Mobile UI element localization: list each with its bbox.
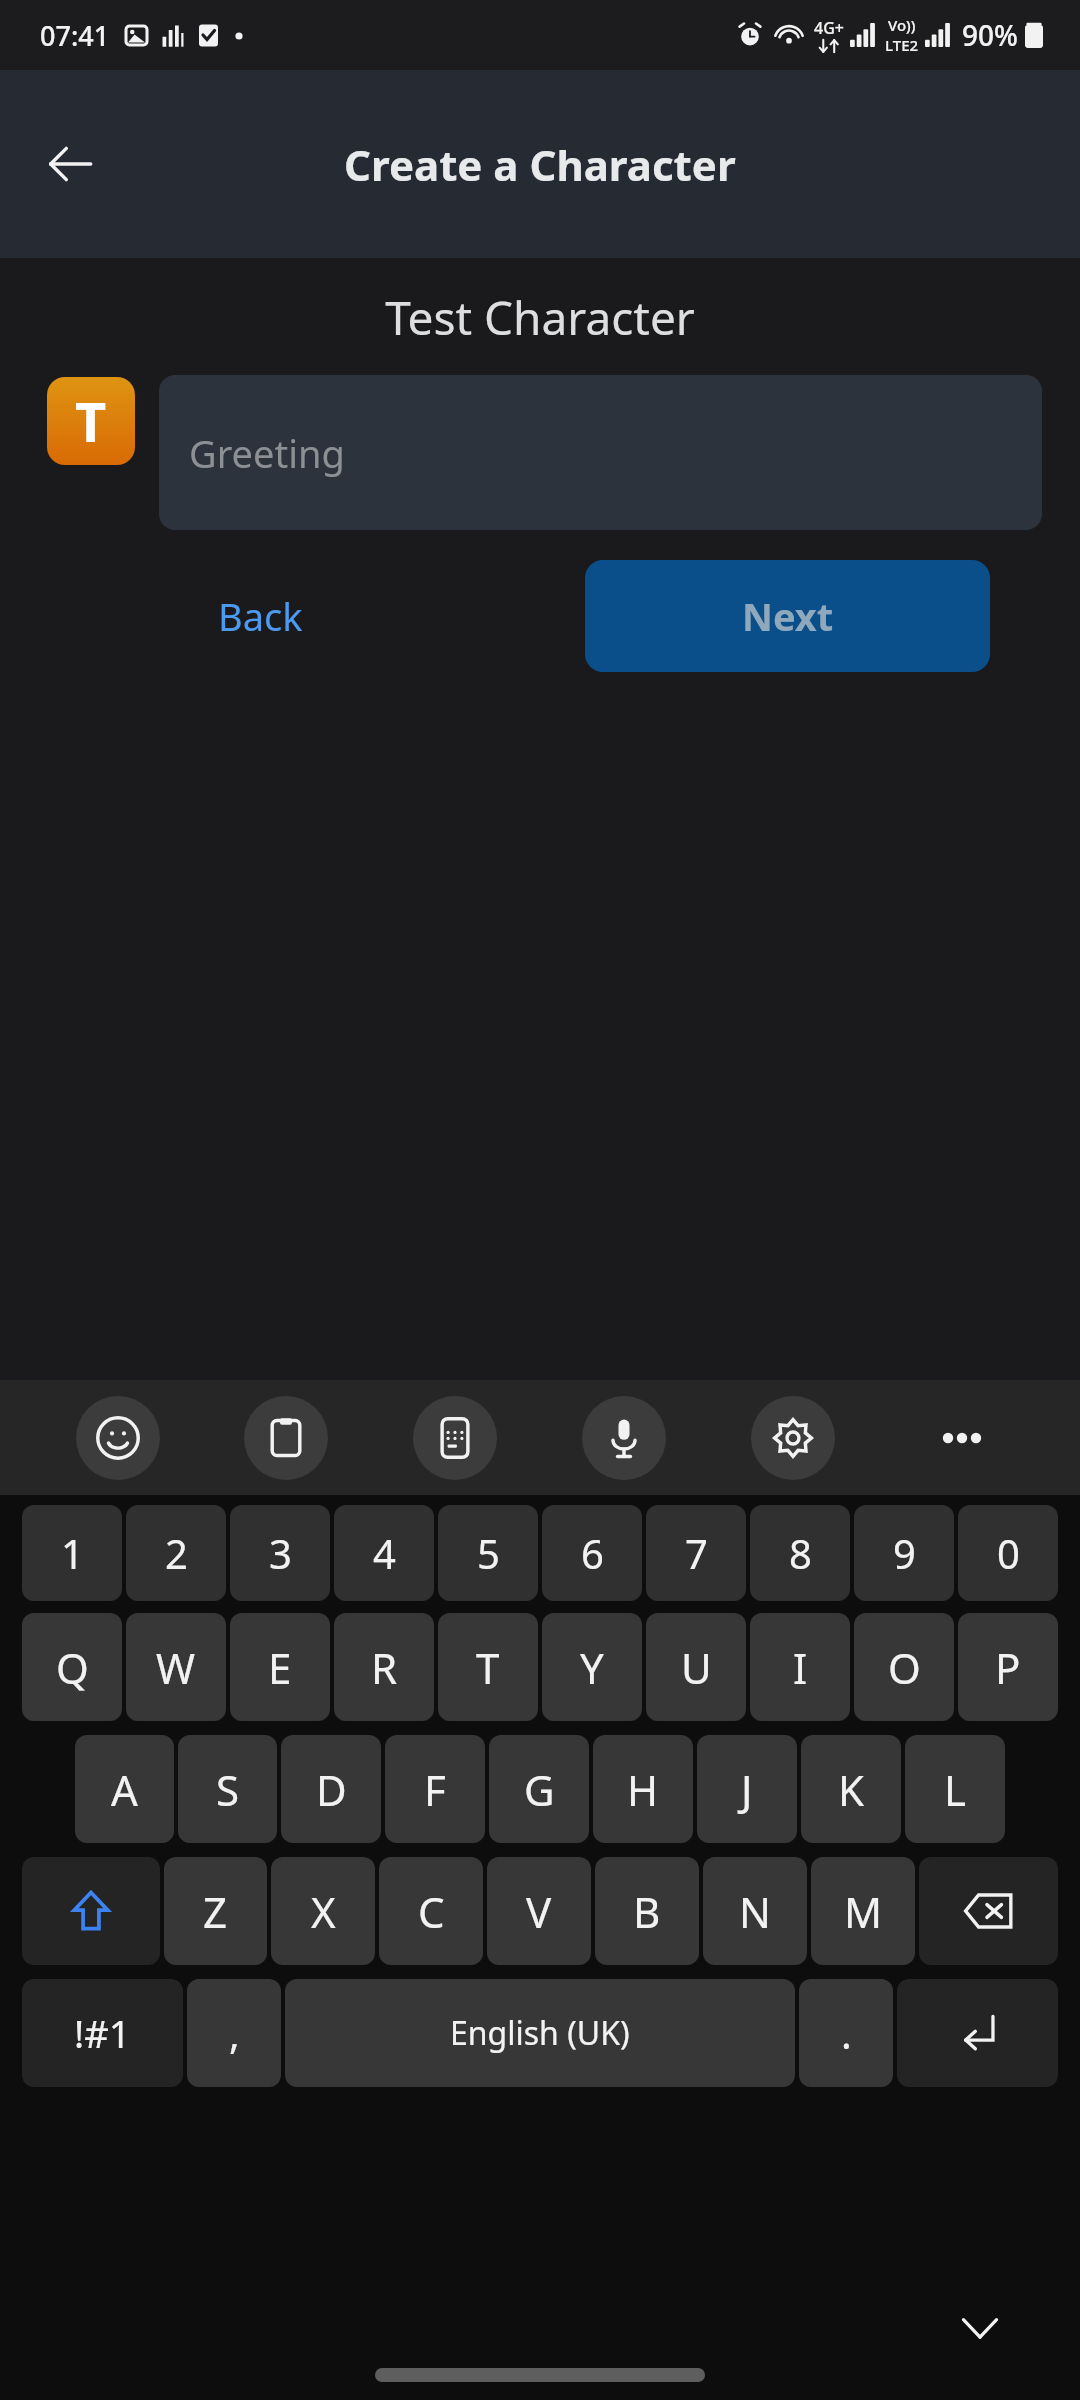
button[interactable]: H — [593, 1735, 693, 1843]
staticText: Greeting — [189, 427, 345, 479]
staticText: F — [424, 1761, 446, 1818]
staticText: X — [311, 1883, 336, 1940]
button[interactable]: W — [126, 1613, 226, 1721]
staticText: S — [216, 1761, 240, 1818]
button[interactable]: Shift — [22, 1857, 160, 1965]
staticText: Y — [580, 1639, 604, 1696]
staticText: A — [111, 1761, 138, 1818]
button[interactable]: 0 — [958, 1505, 1058, 1601]
button[interactable]: Greeting — [159, 375, 1042, 530]
button[interactable]: Y — [542, 1613, 642, 1721]
staticText: D — [316, 1761, 347, 1818]
staticText: K — [838, 1761, 864, 1818]
staticText: Back — [218, 590, 303, 642]
button[interactable]: Back — [200, 578, 321, 654]
button[interactable]: Backspace — [919, 1857, 1058, 1965]
staticText: 9 — [893, 1526, 916, 1580]
button[interactable]: , — [187, 1979, 281, 2087]
staticText: 2 — [165, 1526, 188, 1580]
staticText: 90% — [962, 16, 1018, 54]
staticText: English (UK) — [450, 2011, 630, 2055]
button[interactable]: S — [178, 1735, 277, 1843]
staticText: E — [268, 1639, 292, 1696]
button[interactable]: B — [595, 1857, 699, 1965]
button[interactable]: Clipboard — [202, 1380, 370, 1495]
button[interactable]: I — [750, 1613, 850, 1721]
button[interactable]: Voice input — [539, 1380, 708, 1495]
button[interactable]: U — [646, 1613, 746, 1721]
button[interactable]: More options — [877, 1380, 1046, 1495]
staticText: Next — [742, 590, 834, 642]
button[interactable]: F — [385, 1735, 485, 1843]
staticText: J — [741, 1761, 753, 1818]
staticText: 3 — [269, 1526, 292, 1580]
button[interactable]: 9 — [854, 1505, 954, 1601]
staticText: Create a Character — [344, 136, 736, 193]
button[interactable]: 6 — [542, 1505, 642, 1601]
staticText: 07:41 — [40, 17, 110, 54]
button[interactable]: 3 — [230, 1505, 330, 1601]
button[interactable]: K — [801, 1735, 901, 1843]
staticText: LTE2 — [885, 35, 919, 55]
button[interactable]: Character avatar — [47, 377, 135, 465]
button[interactable]: O — [854, 1613, 954, 1721]
staticText: 6 — [581, 1526, 604, 1580]
button[interactable]: Hide keyboard — [940, 2288, 1020, 2368]
button[interactable]: English (UK) — [285, 1979, 795, 2087]
button[interactable]: L — [905, 1735, 1005, 1843]
button[interactable]: 4 — [334, 1505, 434, 1601]
button[interactable]: V — [487, 1857, 591, 1965]
staticText: . — [841, 2006, 852, 2060]
staticText: B — [633, 1883, 661, 1940]
button[interactable]: Back — [24, 118, 116, 210]
button[interactable]: R — [334, 1613, 434, 1721]
button[interactable]: Z — [164, 1857, 267, 1965]
staticText: 5 — [477, 1526, 500, 1580]
staticText: 4 — [373, 1526, 396, 1580]
staticText: I — [793, 1639, 808, 1696]
staticText: Vo)) — [888, 15, 916, 35]
button[interactable]: 1 — [22, 1505, 122, 1601]
button[interactable]: !#1 — [22, 1979, 183, 2087]
button[interactable]: Emoji — [34, 1380, 202, 1495]
staticText: O — [888, 1639, 921, 1696]
staticText: 4G+ — [814, 17, 844, 39]
staticText: W — [156, 1639, 196, 1696]
staticText: T — [476, 1639, 500, 1696]
button[interactable]: T — [438, 1613, 538, 1721]
button[interactable]: G — [489, 1735, 589, 1843]
button[interactable]: 7 — [646, 1505, 746, 1601]
button[interactable]: J — [697, 1735, 797, 1843]
button[interactable]: A — [75, 1735, 174, 1843]
staticText: T — [75, 384, 107, 458]
staticText: , — [229, 2006, 240, 2060]
staticText: U — [681, 1639, 712, 1696]
button[interactable]: D — [281, 1735, 381, 1843]
button[interactable]: Next — [585, 560, 990, 672]
button[interactable]: Settings — [708, 1380, 877, 1495]
button[interactable]: 5 — [438, 1505, 538, 1601]
staticText: C — [418, 1883, 445, 1940]
staticText: V — [526, 1883, 552, 1940]
staticText: 8 — [789, 1526, 812, 1580]
staticText: P — [995, 1639, 1021, 1696]
staticText: !#1 — [74, 2007, 131, 2059]
button[interactable]: 8 — [750, 1505, 850, 1601]
button[interactable]: . — [799, 1979, 893, 2087]
staticText: Q — [56, 1639, 89, 1696]
staticText: 0 — [997, 1526, 1020, 1580]
button[interactable]: 2 — [126, 1505, 226, 1601]
button[interactable]: X — [271, 1857, 375, 1965]
staticText: N — [739, 1883, 771, 1940]
button[interactable]: P — [958, 1613, 1058, 1721]
button[interactable]: Stickers — [370, 1380, 539, 1495]
button[interactable]: Enter — [897, 1979, 1058, 2087]
button[interactable]: E — [230, 1613, 330, 1721]
button[interactable]: M — [811, 1857, 915, 1965]
staticText: M — [844, 1883, 883, 1940]
button[interactable]: C — [379, 1857, 483, 1965]
button[interactable]: N — [703, 1857, 807, 1965]
button[interactable]: Q — [22, 1613, 122, 1721]
staticText: L — [944, 1761, 967, 1818]
staticText: 1 — [61, 1526, 84, 1580]
